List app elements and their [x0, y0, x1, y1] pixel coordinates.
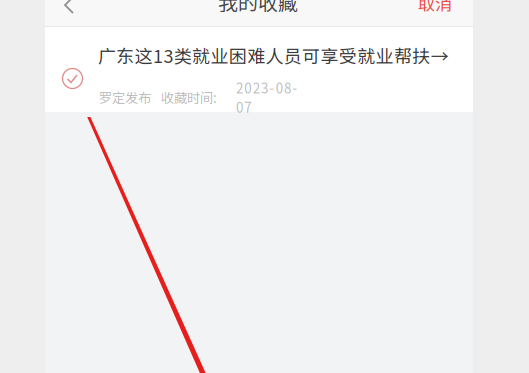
staticText: 2023-08-07 — [236, 78, 297, 117]
staticText: 罗定发布 — [99, 88, 151, 107]
button[interactable]: 取消 — [415, 0, 455, 14]
staticText: 我的收藏 — [218, 0, 298, 16]
staticText: 收藏时间: — [161, 88, 217, 107]
staticText: 广东这13类就业困难人员可享受就业帮扶→ — [98, 42, 449, 68]
staticText: 取消 — [418, 0, 452, 16]
button[interactable]: 广东这13类就业困难人员可享受就业帮扶→ — [45, 27, 473, 112]
button[interactable]: Back — [54, 0, 84, 14]
